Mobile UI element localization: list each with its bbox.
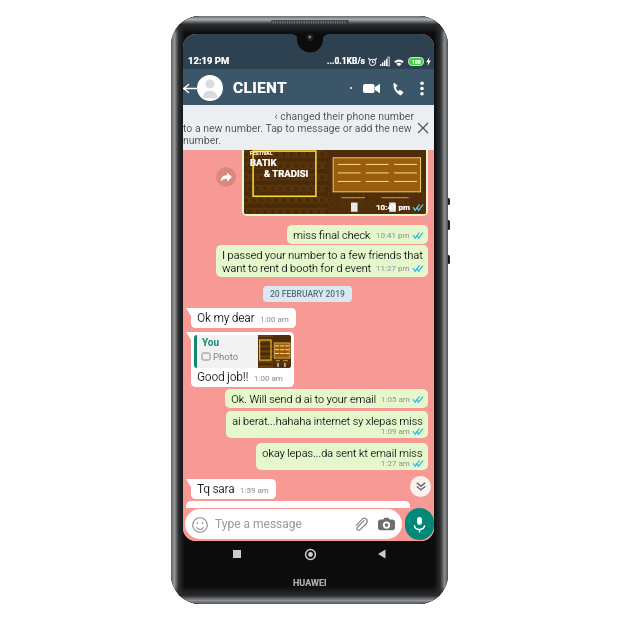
staticText: Type a message: [215, 517, 302, 531]
staticText: 11:27 pm: [376, 264, 410, 273]
staticText: 1:05 am: [381, 395, 410, 404]
button[interactable]: Back: [183, 77, 197, 99]
button[interactable]: Emoji: [185, 509, 402, 539]
button[interactable]: Attach: [351, 515, 369, 533]
staticText: ...0.1KB/s: [327, 56, 365, 66]
button[interactable]: Dismiss: [415, 120, 430, 135]
button[interactable]: Emoji: [190, 515, 209, 534]
staticText: 10:41 pm: [376, 203, 411, 212]
button[interactable]: Camera: [377, 515, 395, 533]
button[interactable]: Tq sara: [186, 479, 276, 499]
staticText: 100: [412, 59, 421, 65]
button[interactable]: Forward: [216, 167, 236, 187]
staticText: Ok. Will send d ai to your email: [231, 392, 376, 405]
staticText: 10:41 pm: [376, 231, 410, 240]
staticText: Tq sara: [197, 482, 235, 496]
button[interactable]: Video call: [361, 78, 382, 99]
button[interactable]: Ok. Will send d ai to your email: [225, 389, 428, 408]
button[interactable]: Scroll to bottom: [410, 476, 431, 497]
staticText: ai berat...hahaha internet sy xlepas mis…: [232, 414, 423, 427]
staticText: 12:19 PM: [188, 55, 230, 66]
staticText: & TRADISI: [264, 168, 309, 179]
button[interactable]: Recents: [227, 544, 247, 564]
button[interactable]: Home: [300, 544, 320, 564]
button[interactable]: Contact photo: [197, 75, 223, 101]
staticText: 20 FEBRUARY 2019: [270, 289, 345, 299]
staticText: You: [202, 337, 220, 349]
staticText: 1:00 am: [260, 315, 289, 324]
staticText: miss final check: [293, 228, 371, 241]
button[interactable]: Voice call: [389, 79, 408, 98]
button[interactable]: 20 FEBRUARY 2019: [263, 286, 352, 302]
staticText: Photo: [213, 351, 239, 362]
staticText: I passed your number to a few friends th…: [222, 248, 423, 261]
button[interactable]: More options: [412, 79, 431, 98]
staticText: want to rent d booth for d event: [222, 261, 371, 274]
staticText: 1:09 am: [381, 427, 410, 436]
staticText: 1:27 am: [381, 459, 410, 468]
button[interactable]: ai berat...hahaha internet sy xlepas mis…: [226, 411, 428, 438]
button[interactable]: Ok my dear: [186, 308, 296, 328]
button[interactable]: miss final check: [287, 225, 428, 244]
staticText: FESTIVAL: [250, 150, 273, 156]
button[interactable]: okay lepas...da sent kt email miss: [256, 443, 428, 470]
staticText: Ok my dear: [197, 311, 255, 325]
button[interactable]: You: [186, 332, 294, 387]
staticText: BATIK: [250, 157, 277, 168]
button[interactable]: FESTIVAL: [242, 138, 428, 216]
staticText: Good job!!: [197, 370, 249, 384]
staticText: 1:00 am: [254, 374, 283, 383]
staticText: CLIENT: [233, 79, 287, 97]
button[interactable]: I passed your number to a few friends th…: [216, 245, 428, 277]
staticText: ‹ changed their phone number: [183, 110, 414, 122]
staticText: HUAWEI: [293, 578, 327, 589]
staticText: number.: [183, 134, 221, 146]
button[interactable]: Record voice message: [405, 508, 434, 540]
staticText: okay lepas...da sent kt email miss: [262, 446, 423, 459]
button[interactable]: Back: [372, 544, 392, 564]
staticText: 1:59 am: [240, 486, 269, 495]
staticText: to a new number. Tap to message or add t…: [183, 122, 412, 134]
